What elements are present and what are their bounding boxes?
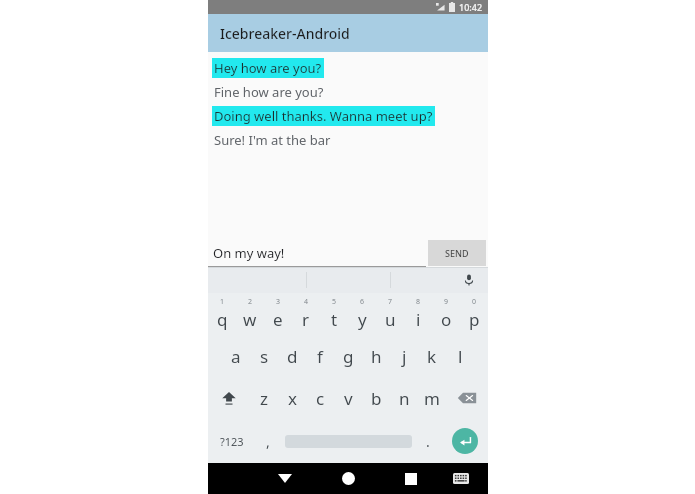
staticText: c bbox=[316, 387, 325, 410]
button[interactable]: 7 bbox=[376, 293, 404, 335]
staticText: 0 bbox=[472, 297, 477, 307]
button[interactable] bbox=[281, 419, 415, 463]
button[interactable]: 3 bbox=[264, 293, 292, 335]
staticText: h bbox=[371, 345, 382, 368]
staticText: . bbox=[426, 432, 430, 451]
staticText: i bbox=[416, 308, 421, 331]
button[interactable]: Icebreaker-Android bbox=[208, 14, 488, 52]
button[interactable]: n bbox=[390, 377, 418, 419]
button[interactable]: Enter bbox=[441, 419, 488, 463]
button[interactable]: g bbox=[334, 335, 362, 377]
staticText: Icebreaker-Android bbox=[220, 24, 350, 43]
button[interactable]: 4 bbox=[292, 293, 320, 335]
button[interactable]: , bbox=[255, 419, 281, 463]
button[interactable]: b bbox=[362, 377, 390, 419]
button[interactable]: 6 bbox=[348, 293, 376, 335]
staticText: 6 bbox=[360, 297, 365, 307]
button[interactable]: a bbox=[222, 335, 250, 377]
button[interactable]: Fine how are you? bbox=[208, 80, 488, 104]
button[interactable]: Hide keyboard bbox=[264, 463, 306, 494]
button[interactable]: c bbox=[306, 377, 334, 419]
button[interactable]: . bbox=[415, 419, 441, 463]
staticText: n bbox=[399, 387, 410, 410]
button[interactable]: Switch keyboard bbox=[446, 463, 476, 494]
staticText: 2 bbox=[248, 297, 253, 307]
button[interactable]: j bbox=[390, 335, 418, 377]
button[interactable]: 1 bbox=[208, 293, 236, 335]
staticText: q bbox=[217, 308, 228, 331]
staticText: 9 bbox=[444, 297, 449, 307]
staticText: Hey how are you? bbox=[214, 59, 322, 77]
staticText: 4 bbox=[304, 297, 309, 307]
button[interactable]: m bbox=[418, 377, 446, 419]
button[interactable]: 0 bbox=[460, 293, 488, 335]
button[interactable]: z bbox=[250, 377, 278, 419]
button[interactable]: Doing well thanks. Wanna meet up? bbox=[208, 104, 488, 128]
button[interactable]: Voice input bbox=[460, 271, 478, 289]
button[interactable]: Shift bbox=[208, 377, 250, 419]
staticText: y bbox=[358, 308, 367, 331]
staticText: e bbox=[273, 308, 283, 331]
button[interactable]: v bbox=[334, 377, 362, 419]
staticText: b bbox=[371, 387, 382, 410]
staticText: t bbox=[331, 308, 338, 331]
button[interactable]: 8 bbox=[404, 293, 432, 335]
button[interactable]: SEND bbox=[428, 240, 486, 266]
staticText: m bbox=[424, 387, 440, 410]
staticText: , bbox=[266, 432, 270, 451]
button[interactable]: l bbox=[446, 335, 474, 377]
staticText: j bbox=[402, 345, 407, 368]
staticText: On my way! bbox=[213, 244, 285, 262]
button[interactable]: Hey how are you? bbox=[208, 56, 488, 80]
button[interactable]: ?123 bbox=[208, 419, 255, 463]
button[interactable]: f bbox=[306, 335, 334, 377]
staticText: a bbox=[231, 345, 241, 368]
button[interactable]: Sure! I'm at the bar bbox=[208, 128, 488, 152]
staticText: Doing well thanks. Wanna meet up? bbox=[214, 107, 433, 125]
staticText: r bbox=[302, 308, 310, 331]
staticText: z bbox=[260, 387, 268, 410]
staticText: Sure! I'm at the bar bbox=[214, 131, 331, 149]
button[interactable]: Home bbox=[327, 463, 369, 494]
staticText: SEND bbox=[445, 247, 469, 259]
staticText: f bbox=[317, 345, 323, 368]
button[interactable]: d bbox=[278, 335, 306, 377]
staticText: ?123 bbox=[220, 434, 244, 449]
button[interactable]: k bbox=[418, 335, 446, 377]
staticText: o bbox=[441, 308, 452, 331]
button[interactable]: s bbox=[250, 335, 278, 377]
button[interactable]: x bbox=[278, 377, 306, 419]
button[interactable]: Backspace bbox=[446, 377, 488, 419]
staticText: 10:42 bbox=[459, 1, 483, 13]
staticText: g bbox=[343, 345, 354, 368]
staticText: x bbox=[288, 387, 297, 410]
staticText: u bbox=[385, 308, 396, 331]
staticText: 7 bbox=[388, 297, 393, 307]
staticText: 5 bbox=[332, 297, 337, 307]
staticText: 8 bbox=[416, 297, 421, 307]
staticText: l bbox=[458, 345, 463, 368]
staticText: w bbox=[243, 308, 257, 331]
button[interactable]: On my way! bbox=[208, 240, 426, 267]
button[interactable]: Recent apps bbox=[390, 463, 432, 494]
staticText: 3 bbox=[276, 297, 281, 307]
staticText: d bbox=[287, 345, 298, 368]
staticText: p bbox=[469, 308, 480, 331]
staticText: k bbox=[427, 345, 437, 368]
staticText: v bbox=[344, 387, 353, 410]
button[interactable]: h bbox=[362, 335, 390, 377]
button[interactable]: 2 bbox=[236, 293, 264, 335]
staticText: s bbox=[260, 345, 269, 368]
staticText: Fine how are you? bbox=[214, 83, 324, 101]
staticText: 1 bbox=[220, 297, 225, 307]
button[interactable]: 5 bbox=[320, 293, 348, 335]
button[interactable]: 9 bbox=[432, 293, 460, 335]
